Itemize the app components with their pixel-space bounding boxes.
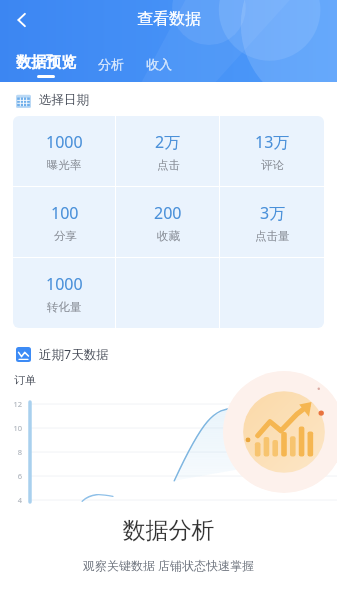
staticText: 观察关键数据 店铺状态快速掌握 [0,557,337,573]
staticText: 数据预览 [16,53,76,72]
staticText: 10 [8,423,22,433]
staticText: 点击量 [255,229,290,243]
staticText: 1000 [46,273,83,295]
staticText: 选择日期 [39,92,89,108]
staticText: 分享 [54,229,77,243]
staticText: 2万 [155,131,181,153]
button[interactable]: 200 [116,187,220,257]
button[interactable]: 分析 [96,54,126,80]
staticText: 近期7天数据 [39,346,109,363]
staticText: 3万 [260,202,286,224]
button[interactable]: 选择日期 [16,92,337,108]
button[interactable]: Back [4,2,40,38]
staticText: 1000 [46,131,83,153]
staticText: 分析 [98,56,124,72]
staticText: 100 [51,202,79,224]
button[interactable]: 100 [13,187,116,257]
staticText: 12 [8,399,22,409]
staticText: 点击 [157,158,180,172]
button[interactable]: 数据预览 [14,51,78,80]
staticText: 订单 [14,373,36,387]
button[interactable]: 13万 [220,116,324,186]
staticText: 曝光率 [47,158,82,172]
staticText: 数据分析 [0,516,337,545]
staticText: 8 [8,447,22,457]
staticText: 收入 [146,56,172,72]
staticText: 200 [154,202,182,224]
staticText: 6 [8,471,22,481]
button[interactable]: 2万 [116,116,220,186]
staticText: 13万 [255,131,290,153]
staticText: 转化量 [47,300,82,314]
staticText: 收藏 [157,229,180,243]
button[interactable]: 3万 [220,187,324,257]
staticText: 4 [8,495,22,505]
staticText: 查看数据 [137,9,201,29]
button[interactable]: 1000 [13,116,116,186]
button[interactable]: 1000 [13,258,116,328]
staticText: 评论 [261,158,284,172]
button[interactable]: 收入 [144,54,174,80]
